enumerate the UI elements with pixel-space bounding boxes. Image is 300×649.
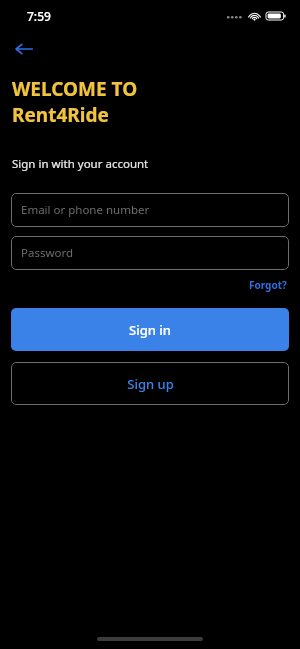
staticText: WELCOME TO [12,76,138,102]
staticText: Rent4Ride [12,102,109,128]
button[interactable]: Back [8,33,40,65]
button[interactable]: Email or phone number [11,193,289,227]
staticText: Sign up [127,375,174,393]
staticText: Email or phone number [21,202,150,218]
staticText: Password [21,245,74,261]
button[interactable]: Sign in [11,308,289,351]
staticText: Forgot? [249,278,287,292]
staticText: 7:59 [27,8,51,24]
staticText: Sign in with your account [12,156,149,172]
button[interactable]: Sign up [11,362,289,405]
button[interactable]: Password [11,236,289,270]
staticText: Sign in [129,321,171,339]
button[interactable]: Forgot? [247,276,289,294]
